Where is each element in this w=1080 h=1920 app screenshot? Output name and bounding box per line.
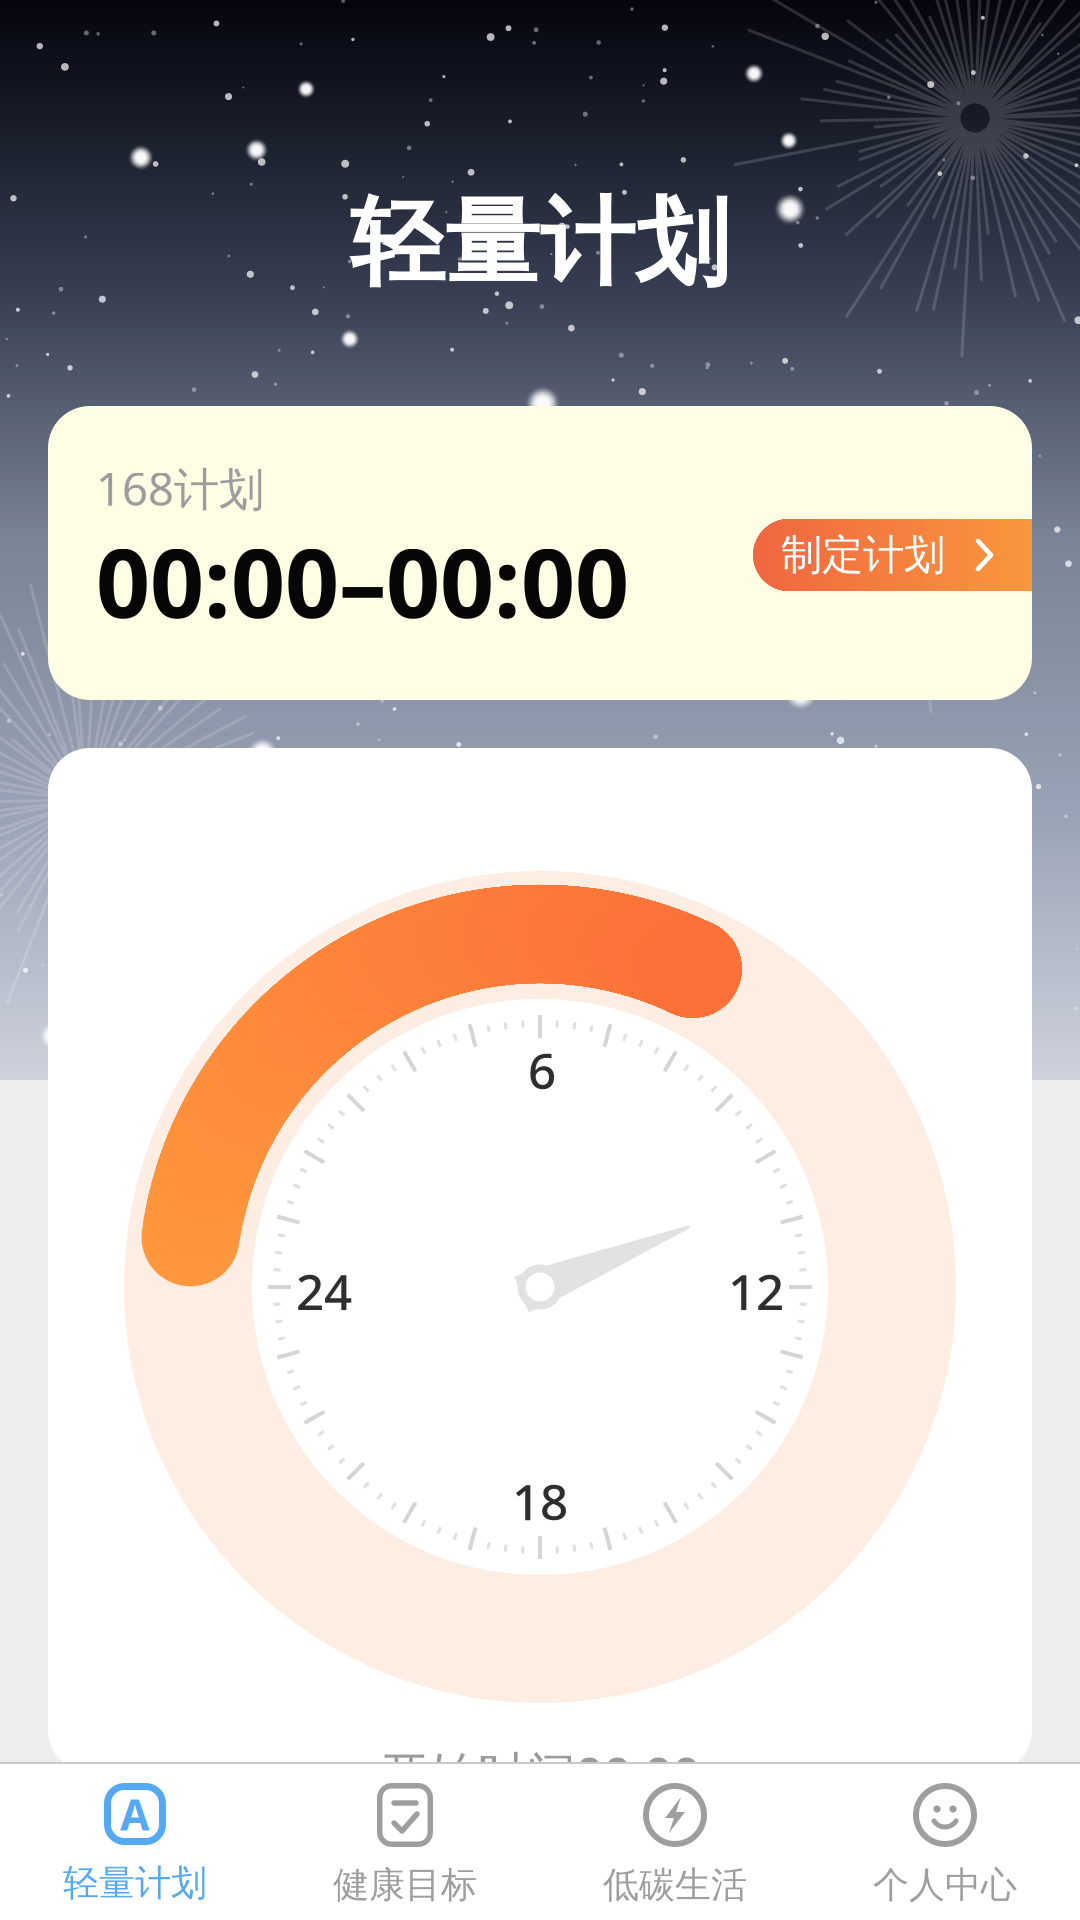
staticText: A [120, 1786, 150, 1842]
staticText: 轻量计划 [63, 1861, 207, 1905]
staticText: 18 [512, 1468, 568, 1534]
staticText: 168计划 [96, 458, 264, 518]
staticText: 6 [528, 1037, 556, 1103]
staticText: 开始时间00:00 [379, 1741, 700, 1806]
staticText: 低碳生活 [603, 1863, 747, 1907]
button[interactable]: A [0, 1764, 270, 1920]
staticText: 24 [296, 1258, 352, 1324]
staticText: 轻量计划 [350, 185, 730, 301]
staticText: 00:00–00:00 [96, 518, 629, 644]
staticText: 个人中心 [873, 1863, 1017, 1907]
button[interactable]: 制定计划 [753, 519, 1080, 591]
button[interactable]: 低碳生活 [540, 1764, 810, 1920]
staticText: 12 [728, 1258, 784, 1324]
staticText: 健康目标 [333, 1863, 477, 1907]
button[interactable]: 个人中心 [810, 1764, 1080, 1920]
button[interactable]: 健康目标 [270, 1764, 540, 1920]
staticText: 制定计划 [781, 530, 945, 580]
